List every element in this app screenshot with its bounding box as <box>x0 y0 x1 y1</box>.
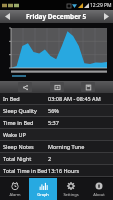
button[interactable]: Settings <box>57 178 85 200</box>
staticText: Graph <box>37 192 49 197</box>
staticText: Sleep Notes <box>3 143 48 150</box>
staticText: In Bed <box>3 95 48 102</box>
staticText: 13:16 Hours <box>48 167 80 174</box>
staticText: Sleep Quality <box>3 107 48 114</box>
staticText: 03:08 AM - 08:45 AM <box>48 95 101 102</box>
button[interactable]: Graph <box>29 178 57 200</box>
staticText: 12:29 PM <box>90 2 112 9</box>
staticText: Total Time in Bed <box>3 167 48 174</box>
button[interactable]: Sleep Quality <box>0 105 113 116</box>
button[interactable]: Wake UP <box>0 129 113 140</box>
staticText: Friday December 5 <box>26 12 87 21</box>
button[interactable]: Refresh <box>50 82 64 92</box>
staticText: 2 <box>48 155 52 162</box>
button[interactable]: Total Time in Bed <box>0 165 113 176</box>
button[interactable]: Share <box>18 82 32 92</box>
button[interactable]: About <box>85 178 113 200</box>
button[interactable]: In Bed <box>0 93 113 104</box>
staticText: Wake UP <box>3 131 48 138</box>
staticText: Total Night <box>3 155 48 162</box>
button[interactable]: Time in Bed <box>0 117 113 128</box>
staticText: 5:37 <box>48 119 59 126</box>
staticText: Morning Tune <box>48 143 85 150</box>
button[interactable]: Total Night <box>0 153 113 164</box>
button[interactable]: Previous day <box>0 10 14 23</box>
staticText: Time in Bed <box>3 119 48 126</box>
button[interactable]: Save <box>81 82 95 92</box>
button[interactable]: Sleep Notes <box>0 141 113 152</box>
staticText: Alarm <box>9 192 21 197</box>
button[interactable]: Alarm <box>0 178 29 200</box>
staticText: 56% <box>48 107 59 114</box>
staticText: About <box>93 192 105 197</box>
button[interactable]: Next day <box>99 10 113 23</box>
staticText: Settings <box>63 192 79 197</box>
